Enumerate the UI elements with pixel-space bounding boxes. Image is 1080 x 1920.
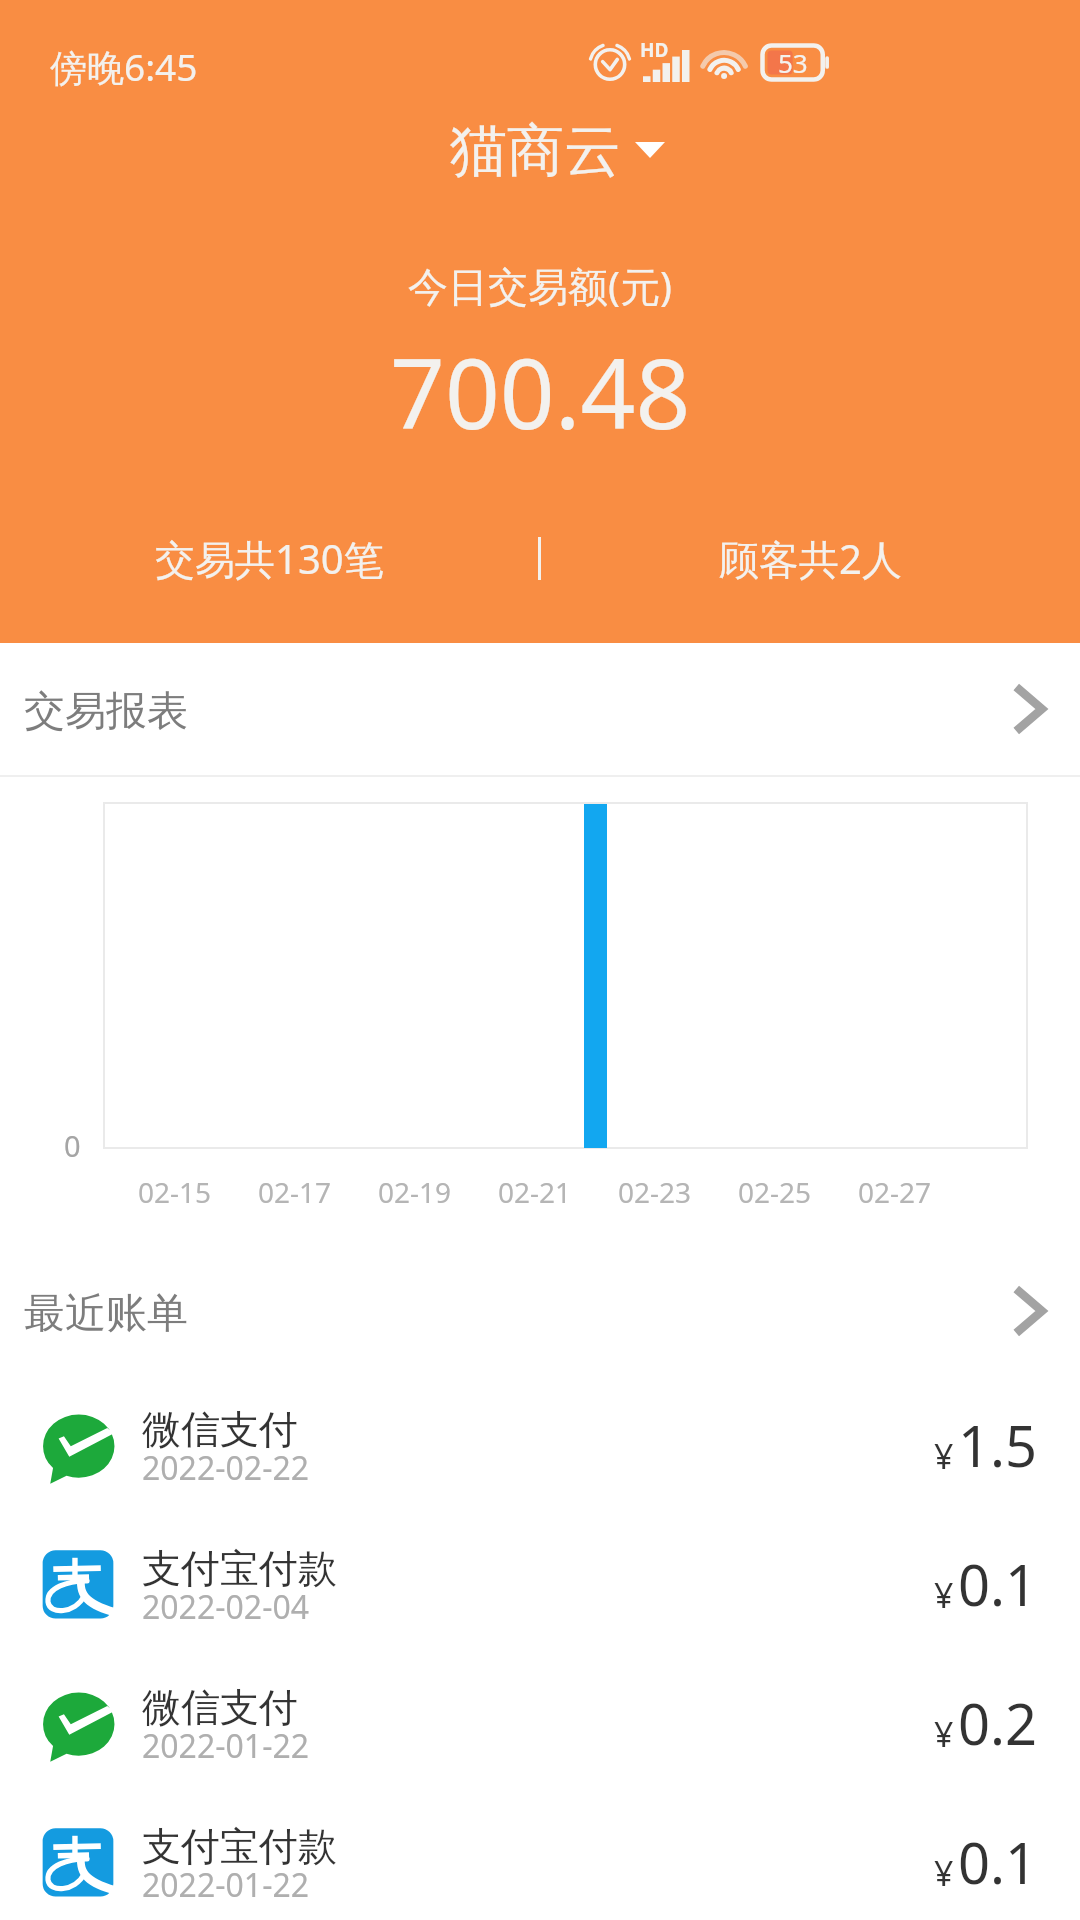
staticText: 2022-01-22: [142, 1863, 310, 1907]
staticText: 02-15: [138, 1173, 212, 1211]
staticText: 02-19: [378, 1173, 452, 1211]
staticText: 02-27: [858, 1173, 932, 1211]
staticText: 1.5: [958, 1407, 1038, 1483]
staticText: 0.1: [958, 1824, 1038, 1900]
staticText: 傍晚6:45: [50, 41, 198, 92]
button[interactable]: 顾客共2人: [541, 522, 1080, 594]
staticText: 交易共130笔: [155, 531, 384, 586]
button[interactable]: 猫商云, 切换店铺: [440, 109, 680, 193]
staticText: 最近账单: [24, 1288, 188, 1340]
staticText: 今日交易额(元): [408, 258, 672, 313]
staticText: 顾客共2人: [719, 531, 902, 586]
button[interactable]: 支付宝付款: [0, 1544, 1080, 1683]
staticText: ¥: [934, 1850, 954, 1896]
staticText: 微信支付: [142, 1405, 298, 1454]
staticText: 02-23: [618, 1173, 692, 1211]
staticText: ¥: [934, 1572, 954, 1618]
staticText: 微信支付: [142, 1683, 298, 1732]
button[interactable]: 微信支付: [0, 1683, 1080, 1822]
staticText: 2022-02-04: [142, 1585, 310, 1629]
staticText: 0: [64, 1126, 81, 1165]
staticText: ¥: [934, 1711, 954, 1757]
staticText: 53: [778, 45, 808, 80]
staticText: 700.48: [390, 326, 691, 457]
button[interactable]: 交易报表: [0, 643, 1080, 775]
button[interactable]: 交易共130笔: [0, 522, 538, 594]
staticText: 交易报表: [24, 686, 188, 738]
staticText: 2022-01-22: [142, 1724, 310, 1768]
staticText: 0.1: [958, 1546, 1038, 1622]
staticText: 02-21: [498, 1173, 572, 1211]
button[interactable]: 最近账单: [0, 1245, 1080, 1377]
button[interactable]: 支付宝付款: [0, 1822, 1080, 1920]
staticText: 2022-02-22: [142, 1446, 310, 1490]
staticText: 02-17: [258, 1173, 332, 1211]
button[interactable]: 微信支付: [0, 1405, 1080, 1544]
staticText: 支付宝付款: [142, 1822, 337, 1871]
staticText: 支付宝付款: [142, 1544, 337, 1593]
staticText: HD: [640, 37, 669, 63]
staticText: 0.2: [958, 1685, 1038, 1761]
staticText: 02-25: [738, 1173, 812, 1211]
staticText: 猫商云: [450, 115, 621, 187]
staticText: ¥: [934, 1433, 954, 1479]
